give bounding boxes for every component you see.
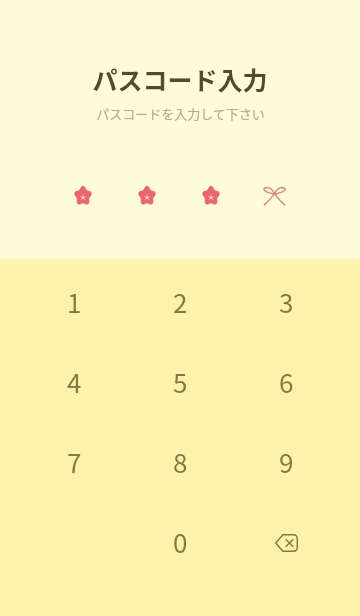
staticText: 8 bbox=[173, 443, 188, 481]
staticText: 1 bbox=[67, 283, 82, 321]
staticText: 2 bbox=[173, 283, 188, 321]
button[interactable]: 3 bbox=[238, 265, 334, 339]
button[interactable]: 8 bbox=[132, 425, 228, 499]
button[interactable]: 9 bbox=[238, 425, 334, 499]
button[interactable]: 1 bbox=[26, 265, 122, 339]
staticText: パスコード入力 bbox=[92, 61, 268, 97]
staticText: 5 bbox=[173, 363, 188, 401]
button[interactable]: 7 bbox=[26, 425, 122, 499]
button[interactable]: Delete bbox=[238, 505, 334, 579]
button[interactable]: 6 bbox=[238, 345, 334, 419]
staticText: 7 bbox=[67, 443, 82, 481]
staticText: パスコードを入力して下さい bbox=[96, 104, 265, 123]
button[interactable]: 2 bbox=[132, 265, 228, 339]
staticText: 0 bbox=[173, 523, 188, 561]
button[interactable]: 4 bbox=[26, 345, 122, 419]
staticText: 3 bbox=[279, 283, 294, 321]
button[interactable]: 5 bbox=[132, 345, 228, 419]
button[interactable]: 0 bbox=[132, 505, 228, 579]
staticText: 6 bbox=[279, 363, 294, 401]
staticText: 9 bbox=[279, 443, 294, 481]
staticText: 4 bbox=[67, 363, 82, 401]
